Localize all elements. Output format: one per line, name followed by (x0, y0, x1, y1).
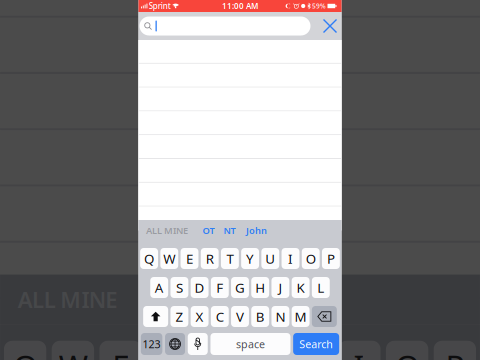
button[interactable] (138, 88, 341, 111)
button[interactable]: B (251, 306, 269, 327)
button[interactable] (138, 159, 341, 183)
button[interactable]: T (221, 248, 239, 269)
button[interactable]: L (312, 277, 330, 298)
button[interactable]: A (150, 277, 168, 298)
button[interactable]: M (292, 306, 309, 327)
button[interactable]: I (281, 248, 299, 269)
button[interactable]: V (231, 306, 249, 327)
button[interactable]: Next keyboard (165, 333, 185, 355)
staticText: H (255, 279, 265, 296)
button[interactable] (139, 16, 310, 35)
button[interactable]: K (292, 277, 309, 298)
button[interactable] (138, 135, 341, 159)
button[interactable]: W (160, 248, 178, 269)
button[interactable]: B (251, 306, 269, 327)
button[interactable]: V (231, 306, 249, 327)
button[interactable]: D (191, 277, 209, 298)
button[interactable]: Shift (143, 306, 168, 327)
button[interactable]: D (191, 277, 209, 298)
button[interactable] (138, 111, 341, 135)
button[interactable]: M (292, 306, 309, 327)
button[interactable] (138, 183, 341, 207)
button[interactable]: S (170, 277, 188, 298)
button[interactable]: A (150, 277, 168, 298)
button[interactable]: Search (293, 333, 339, 355)
button[interactable] (138, 64, 341, 88)
button[interactable] (139, 16, 310, 35)
button[interactable]: T (221, 248, 239, 269)
button[interactable]: U (261, 248, 279, 269)
button[interactable]: I (281, 248, 299, 269)
button[interactable]: Y (241, 248, 259, 269)
button[interactable] (138, 64, 341, 88)
button[interactable] (138, 207, 341, 230)
button[interactable]: J (271, 277, 289, 298)
button[interactable] (138, 40, 341, 64)
button[interactable]: John (241, 220, 271, 241)
button[interactable]: F (211, 277, 229, 298)
button[interactable] (138, 88, 341, 111)
button[interactable]: John (241, 220, 271, 241)
button[interactable]: X (191, 306, 208, 327)
button[interactable]: H (251, 277, 269, 298)
button[interactable] (138, 207, 341, 230)
button[interactable]: H (251, 277, 269, 298)
button[interactable]: NT (220, 220, 238, 241)
button[interactable]: F (211, 277, 229, 298)
button[interactable]: P (322, 248, 340, 269)
button[interactable] (138, 135, 341, 159)
button[interactable]: K (292, 277, 309, 298)
button[interactable]: ALL MINE (143, 220, 190, 241)
button[interactable]: E (180, 248, 198, 269)
button[interactable]: Y (241, 248, 259, 269)
staticText: 123 (143, 337, 161, 351)
button[interactable] (138, 111, 341, 135)
button[interactable]: N (271, 306, 289, 327)
button[interactable]: Z (170, 306, 188, 327)
button[interactable]: Shift (143, 306, 168, 327)
button[interactable]: space (210, 333, 290, 355)
button[interactable]: Q (140, 248, 158, 269)
button[interactable]: Next keyboard (165, 333, 185, 355)
button[interactable]: Z (170, 306, 188, 327)
button[interactable]: O (302, 248, 320, 269)
staticText: U (265, 250, 275, 267)
staticText: S (176, 279, 183, 296)
button[interactable]: C (211, 306, 229, 327)
button[interactable]: Delete (312, 306, 337, 327)
button[interactable]: X (191, 306, 208, 327)
button[interactable] (138, 40, 341, 64)
button[interactable]: OT (199, 220, 217, 241)
button[interactable]: Dictate (188, 333, 208, 355)
button[interactable]: Dictate (188, 333, 208, 355)
button[interactable]: P (322, 248, 340, 269)
button[interactable]: 123 (141, 333, 162, 355)
staticText: John (246, 224, 267, 237)
button[interactable]: NT (220, 220, 238, 241)
button[interactable]: Close search (318, 15, 341, 37)
button[interactable]: space (210, 333, 290, 355)
button[interactable]: Q (140, 248, 158, 269)
button[interactable]: 123 (141, 333, 162, 355)
button[interactable]: R (201, 248, 219, 269)
button[interactable]: R (201, 248, 219, 269)
staticText: Q (144, 250, 154, 267)
button[interactable]: ALL MINE (143, 220, 190, 241)
button[interactable]: Search (293, 333, 339, 355)
button[interactable]: L (312, 277, 330, 298)
button[interactable]: OT (199, 220, 217, 241)
button[interactable]: U (261, 248, 279, 269)
button[interactable]: O (302, 248, 320, 269)
button[interactable]: W (160, 248, 178, 269)
button[interactable]: E (180, 248, 198, 269)
button[interactable]: G (231, 277, 249, 298)
button[interactable]: N (271, 306, 289, 327)
button[interactable]: Delete (312, 306, 337, 327)
button[interactable]: C (211, 306, 229, 327)
button[interactable]: J (271, 277, 289, 298)
button[interactable]: G (231, 277, 249, 298)
button[interactable]: Close search (318, 15, 341, 37)
button[interactable] (138, 159, 341, 183)
button[interactable]: S (170, 277, 188, 298)
button[interactable] (138, 183, 341, 207)
